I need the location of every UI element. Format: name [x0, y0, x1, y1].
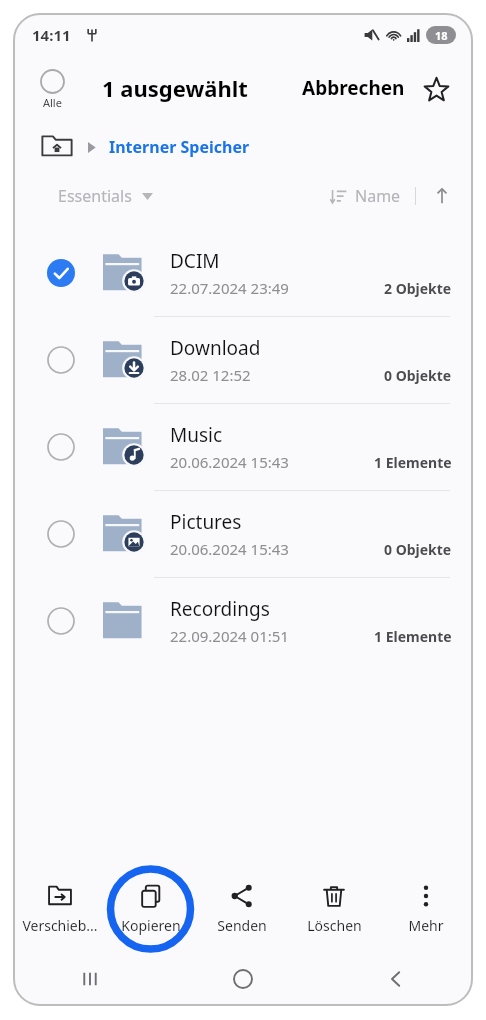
button[interactable]: Recordings	[14, 578, 472, 664]
button[interactable]: Pictures	[14, 491, 472, 577]
button[interactable]: Letzte Apps	[14, 953, 166, 1005]
button[interactable]: Kopieren	[105, 883, 196, 935]
button[interactable]: Löschen	[288, 883, 380, 935]
button[interactable]: Startbildschirm	[166, 953, 319, 1005]
staticText: 0 Objekte	[384, 366, 452, 385]
button[interactable]: Verschieb...	[14, 883, 105, 935]
staticText: 14:11	[32, 25, 71, 45]
button[interactable]: DCIM	[14, 230, 472, 316]
staticText: 1 ausgewählt	[102, 73, 248, 103]
button[interactable]: Name	[330, 185, 401, 207]
staticText: 1 Elemente	[374, 627, 452, 646]
staticText: 22.09.2024 01:51	[170, 626, 289, 646]
button[interactable]: Aufsteigend sortieren	[430, 184, 454, 208]
button[interactable]: Mehr	[380, 883, 472, 935]
staticText: DCIM	[170, 248, 220, 274]
staticText: 22.07.2024 23:49	[170, 278, 289, 298]
staticText: 20.06.2024 15:43	[170, 539, 289, 559]
button[interactable]: Abbrechen	[302, 75, 405, 101]
staticText: Löschen	[307, 916, 362, 935]
button[interactable]: Startordner	[40, 133, 74, 161]
button[interactable]: Alle	[36, 65, 69, 114]
button[interactable]: Senden	[196, 883, 288, 935]
button[interactable]: Essentials	[58, 185, 153, 207]
button[interactable]: Download	[14, 317, 472, 403]
staticText: 18	[435, 28, 448, 43]
staticText: Kopieren	[121, 916, 181, 935]
button[interactable]: Music	[14, 404, 472, 490]
button[interactable]: Favorit	[416, 69, 456, 109]
staticText: Music	[170, 422, 223, 448]
staticText: 0 Objekte	[384, 540, 452, 559]
staticText: Essentials	[58, 185, 132, 207]
button[interactable]: Zurück	[319, 953, 472, 1005]
staticText: Name	[355, 185, 401, 207]
staticText: Recordings	[170, 596, 270, 622]
staticText: Mehr	[408, 916, 444, 935]
staticText: Download	[170, 335, 261, 361]
staticText: Pictures	[170, 509, 242, 535]
staticText: 1 Elemente	[374, 453, 452, 472]
staticText: Senden	[217, 916, 267, 935]
staticText: Verschieb...	[22, 916, 98, 935]
staticText: 28.02 12:52	[170, 365, 251, 385]
staticText: Alle	[43, 95, 62, 110]
staticText: 20.06.2024 15:43	[170, 452, 289, 472]
button[interactable]: Interner Speicher	[109, 136, 250, 158]
staticText: 2 Objekte	[384, 279, 452, 298]
